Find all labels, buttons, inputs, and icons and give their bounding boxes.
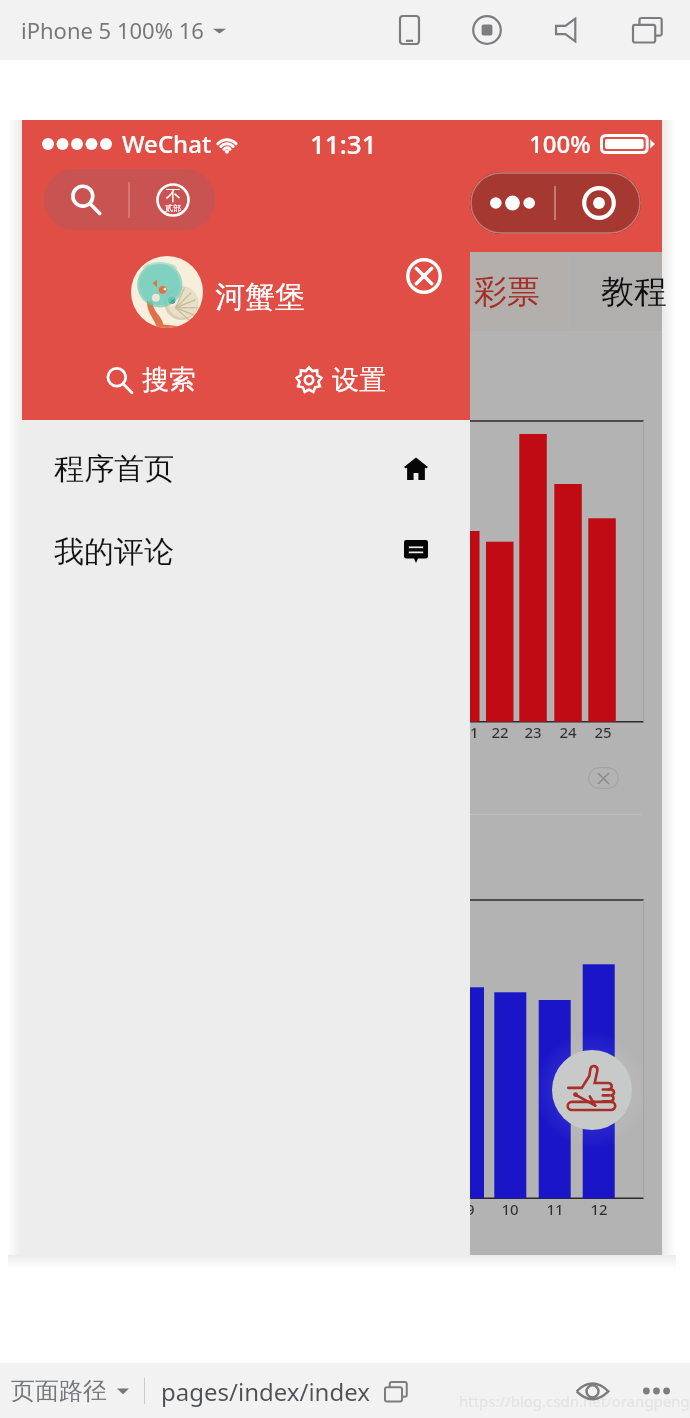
button[interactable]: 搜索 xyxy=(100,353,202,407)
button[interactable]: Search and scan xyxy=(44,169,215,230)
button[interactable]: 教程 xyxy=(570,252,690,331)
staticText: 25 xyxy=(594,722,612,742)
button[interactable]: 设置 xyxy=(289,353,392,407)
button[interactable]: Device xyxy=(370,1,449,59)
button[interactable]: 彩票 xyxy=(443,252,570,331)
button[interactable]: Close mini program xyxy=(556,172,641,234)
staticText: 设置 xyxy=(332,363,386,397)
button[interactable]: iPhone 5 100% 16 xyxy=(13,8,234,52)
staticText: 11:31 xyxy=(310,126,377,161)
staticText: 10 xyxy=(501,1199,519,1219)
button[interactable]: More options xyxy=(634,1369,678,1413)
staticText: 23 xyxy=(524,722,542,742)
button[interactable]: More xyxy=(470,172,554,234)
button[interactable]: Copy path xyxy=(378,1374,412,1408)
button[interactable]: Sound xyxy=(528,1,608,59)
staticText: 09 xyxy=(457,1199,475,1219)
staticText: 22 xyxy=(491,722,509,742)
staticText: 河蟹堡 xyxy=(215,278,305,316)
staticText: pages/index/index xyxy=(161,1375,370,1408)
staticText: 程序首页 xyxy=(54,450,174,488)
staticText: https://blog.csdn.net/orangpeng xyxy=(459,1391,690,1411)
staticText: 页面路径 xyxy=(11,1376,107,1406)
staticText: 我的评论 xyxy=(54,533,174,571)
button[interactable]: Close drawer xyxy=(402,254,446,298)
staticText: 24 xyxy=(559,722,577,742)
button[interactable]: Windows xyxy=(609,1,685,59)
staticText: WeChat xyxy=(122,127,212,160)
button[interactable]: Record xyxy=(447,1,527,59)
button[interactable]: 程序首页 xyxy=(22,427,470,510)
staticText: 贰部 xyxy=(165,203,181,213)
button[interactable]: Thumbs up xyxy=(552,1050,632,1130)
button[interactable]: 页面路径 xyxy=(3,1368,137,1414)
staticText: 12 xyxy=(590,1199,608,1219)
staticText: 100% xyxy=(529,127,591,160)
staticText: 11 xyxy=(546,1199,564,1219)
staticText: 搜索 xyxy=(142,363,196,397)
button[interactable]: Preview xyxy=(570,1369,614,1413)
staticText: 教程 xyxy=(601,271,667,313)
staticText: iPhone 5 100% 16 xyxy=(21,15,204,45)
staticText: 不 xyxy=(166,187,181,206)
button[interactable]: 我的评论 xyxy=(22,510,470,593)
staticText: 彩票 xyxy=(474,271,540,313)
button[interactable]: Close tip xyxy=(588,767,619,789)
staticText: 21 xyxy=(461,722,479,742)
